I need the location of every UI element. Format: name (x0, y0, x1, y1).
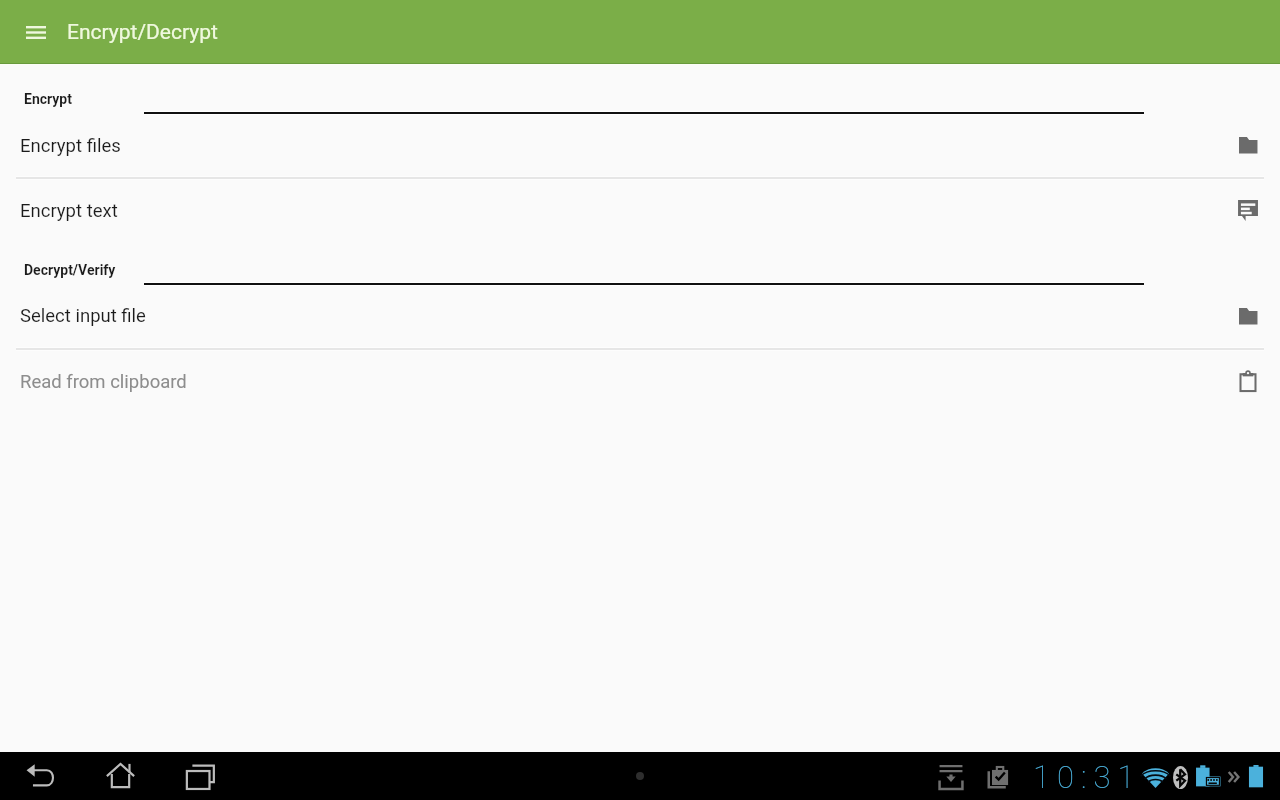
button[interactable]: Home (96, 752, 144, 800)
other: Select input file (1236, 304, 1260, 328)
button[interactable]: Recent apps (176, 752, 224, 800)
staticText: Read from clipboard (20, 371, 187, 393)
other: Read from clipboard (1236, 370, 1260, 394)
button[interactable]: Select input file (0, 285, 1280, 348)
staticText: Encrypt/Decrypt (67, 20, 218, 45)
staticText: Encrypt files (20, 135, 121, 157)
staticText: 10:31 (1033, 759, 1142, 795)
other: Encrypt files (1236, 133, 1260, 157)
button[interactable]: Encrypt files (0, 114, 1280, 178)
staticText: Encrypt text (20, 200, 118, 222)
button[interactable]: Open navigation drawer (12, 8, 60, 56)
staticText: Encrypt (24, 91, 72, 107)
button[interactable]: Back (16, 752, 64, 800)
button[interactable]: Encrypt text (0, 179, 1280, 243)
staticText: Decrypt/Verify (24, 262, 116, 278)
staticText: Select input file (20, 305, 146, 327)
other: Encrypt text (1236, 198, 1260, 222)
button: Read from clipboard (0, 349, 1280, 413)
